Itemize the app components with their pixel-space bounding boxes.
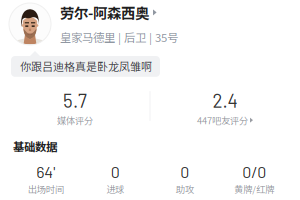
staticText: 5.7: [63, 89, 87, 111]
staticText: 0/0: [242, 162, 266, 181]
staticText: 64': [36, 162, 55, 181]
staticText: 黄牌/红牌: [234, 182, 274, 196]
button[interactable]: 2.4: [150, 89, 300, 127]
staticText: 0: [180, 162, 189, 181]
staticText: 助攻: [176, 182, 194, 196]
staticText: 你跟吕迪格真是卧龙凤雏啊: [20, 58, 152, 74]
staticText: 出场时间: [28, 182, 64, 196]
staticText: 皇家马德里 | 后卫 | 35号: [60, 29, 178, 45]
staticText: 447吧友评分: [197, 113, 248, 127]
staticText: 进球: [106, 182, 124, 196]
staticText: 0: [111, 162, 120, 181]
staticText: 媒体评分: [57, 113, 93, 127]
staticText: 2.4: [212, 89, 237, 111]
button[interactable]: 劳尔-阿森西奥: [0, 0, 300, 45]
button[interactable]: 你跟吕迪格真是卧龙凤雏啊: [11, 51, 191, 78]
staticText: 基础数据: [13, 138, 57, 154]
staticText: 劳尔-阿森西奥: [60, 2, 149, 23]
